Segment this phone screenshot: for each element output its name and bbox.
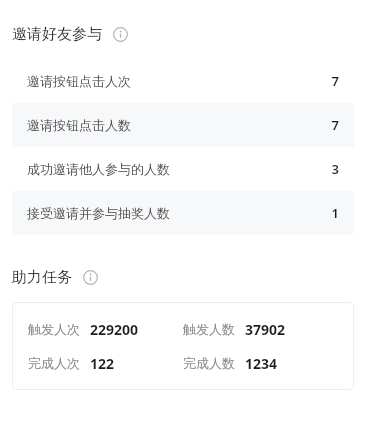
staticText: 邀请按钮点击人数 [27,117,131,133]
button[interactable]: 触发人数 [183,312,354,346]
staticText: 229200 [90,320,139,339]
button[interactable]: 邀请按钮点击人次 [12,59,354,103]
button[interactable]: 触发人次 [28,312,183,346]
button[interactable]: 邀请按钮点击人数 [12,103,354,147]
staticText: 完成人次 [28,355,80,371]
staticText: 37902 [245,320,286,339]
button[interactable]: 成功邀请他人参与的人数 [12,147,354,191]
button[interactable]: 关于邀请好友参与的说明 [110,24,130,44]
button[interactable]: 完成人数 [183,346,354,380]
staticText: 3 [331,160,339,178]
staticText: 接受邀请并参与抽奖人数 [27,205,170,221]
staticText: 触发人次 [28,321,80,337]
staticText: 1 [331,204,339,222]
button[interactable]: 完成人次 [28,346,183,380]
staticText: 成功邀请他人参与的人数 [27,161,170,177]
staticText: 触发人数 [183,321,235,337]
staticText: 7 [331,116,339,134]
staticText: 7 [331,72,339,90]
staticText: 122 [90,354,115,373]
button[interactable]: 关于助力任务的说明 [80,267,100,287]
staticText: 1234 [245,354,278,373]
staticText: 邀请按钮点击人次 [27,73,131,89]
staticText: 邀请好友参与 [12,25,102,44]
button[interactable]: 接受邀请并参与抽奖人数 [12,191,354,235]
staticText: 完成人数 [183,355,235,371]
staticText: 助力任务 [12,268,72,287]
